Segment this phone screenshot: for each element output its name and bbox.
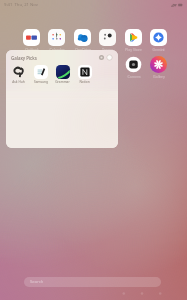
button[interactable]: Play Store: [125, 29, 142, 52]
button[interactable]: Gemini: [150, 29, 167, 52]
button[interactable]: Outlook: [23, 29, 40, 52]
staticText: Grammarly: [55, 80, 70, 84]
button[interactable]: Samsung: [33, 65, 48, 84]
staticText: OneDrive: [75, 47, 91, 52]
staticText: Notion: [79, 80, 90, 84]
staticText: Calendar: [49, 47, 65, 52]
button[interactable]: Notion: [77, 65, 92, 84]
staticText: Teams: [102, 47, 113, 52]
staticText: Ask Huh: [12, 80, 25, 84]
staticText: 9:41 Thu, 21 Nov: [4, 2, 38, 8]
button[interactable]: OneDrive: [74, 29, 91, 52]
staticText: Gallery: [153, 74, 165, 79]
button[interactable]: Search: [24, 277, 161, 287]
button[interactable]: Refresh: [98, 54, 105, 61]
button[interactable]: Gallery: [150, 56, 167, 79]
button[interactable]: Calendar: [48, 29, 65, 52]
staticText: Search: [30, 279, 44, 285]
staticText: Galaxy Picks: [11, 55, 37, 61]
staticText: Gemini: [152, 47, 165, 52]
button[interactable]: Grammarly: [55, 65, 70, 84]
button[interactable]: Ask Huh: [11, 65, 26, 84]
button[interactable]: Galaxy Picks: [6, 50, 118, 148]
button[interactable]: Camera: [125, 56, 142, 79]
staticText: Play Store: [125, 47, 142, 52]
staticText: Outlook: [25, 47, 39, 52]
staticText: Camera: [127, 74, 141, 79]
button[interactable]: More options: [106, 54, 113, 61]
staticText: Samsung: [34, 80, 48, 84]
button[interactable]: Teams: [99, 29, 116, 52]
